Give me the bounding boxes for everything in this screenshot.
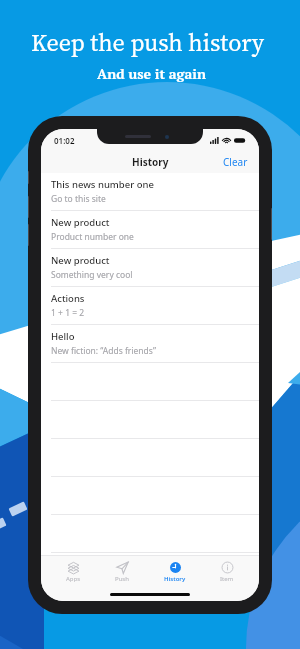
staticText: Keep the push history: [31, 26, 264, 59]
staticText: Apps: [66, 575, 81, 583]
staticText: New product: [51, 216, 110, 229]
staticText: Clear: [223, 155, 248, 169]
staticText: History: [132, 155, 169, 169]
other: Item: [221, 561, 234, 574]
button[interactable]: New product: [41, 249, 259, 286]
button[interactable]: This news number one: [41, 173, 259, 210]
staticText: New fiction: “Adds friends”: [51, 345, 156, 357]
button[interactable]: Actions: [41, 287, 259, 324]
other: Apps: [67, 561, 80, 574]
staticText: This news number one: [51, 178, 154, 191]
button[interactable]: Item: [211, 559, 243, 585]
staticText: Actions: [51, 292, 85, 305]
staticText: New product: [51, 254, 110, 267]
staticText: 01:02: [54, 135, 75, 146]
staticText: History: [164, 575, 186, 583]
staticText: Push: [115, 575, 129, 583]
staticText: Product number one: [51, 231, 134, 243]
other: Push: [116, 561, 129, 574]
button[interactable]: Apps: [57, 559, 90, 585]
staticText: 1 + 1 = 2: [51, 307, 85, 319]
button[interactable]: History: [155, 559, 195, 585]
button[interactable]: Hello: [41, 325, 259, 362]
staticText: Hello: [51, 330, 75, 343]
staticText: Something very cool: [51, 269, 133, 281]
staticText: Go to this site: [51, 193, 106, 205]
button[interactable]: Push: [106, 559, 138, 585]
other: History: [169, 561, 182, 574]
button[interactable]: Clear: [212, 151, 259, 173]
button[interactable]: New product: [41, 211, 259, 248]
staticText: Item: [220, 575, 234, 583]
staticText: And use it again: [97, 64, 206, 83]
